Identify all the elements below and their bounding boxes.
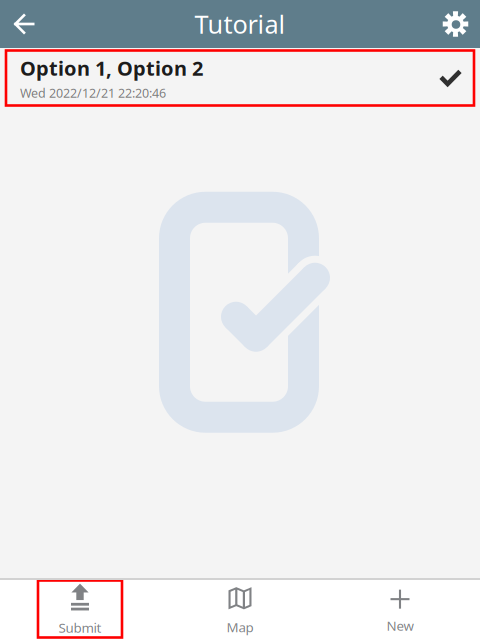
button[interactable]: Map <box>160 580 320 637</box>
staticText: Submit <box>58 619 101 636</box>
staticText: Map <box>226 618 253 636</box>
staticText: New <box>386 617 413 634</box>
button[interactable]: Submit <box>0 580 160 637</box>
button[interactable]: Back <box>0 0 48 47</box>
button[interactable]: Option 1, Option 2 <box>0 48 480 105</box>
button[interactable]: Settings <box>432 0 480 47</box>
button[interactable]: New <box>320 580 480 637</box>
staticText: Option 1, Option 2 <box>20 55 203 81</box>
staticText: Wed 2022/12/21 22:20:46 <box>20 84 166 101</box>
staticText: Tutorial <box>194 7 285 41</box>
